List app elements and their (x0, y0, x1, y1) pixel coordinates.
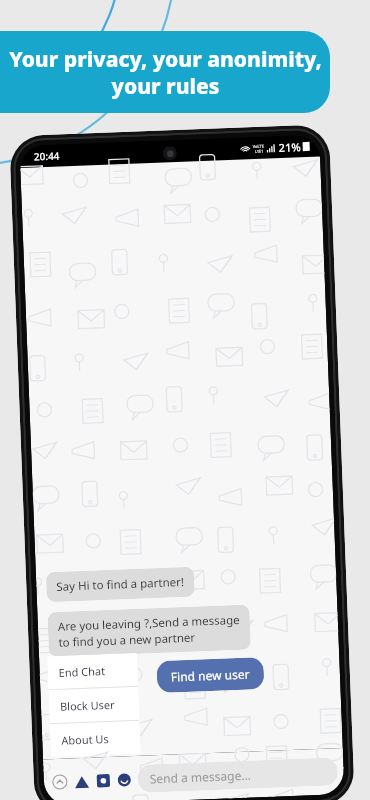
staticText: VoLTE (252, 144, 265, 149)
staticText: 20:44 (34, 148, 60, 163)
staticText: Block User (60, 697, 115, 714)
button[interactable]: Gallery (72, 772, 91, 790)
button[interactable]: Send a message... (137, 757, 338, 793)
staticText: End Chat (58, 663, 106, 680)
button[interactable]: End Chat (47, 653, 138, 689)
button[interactable]: About Us (50, 721, 141, 757)
button[interactable]: Block User (48, 687, 140, 723)
button[interactable]: Expand (49, 771, 70, 792)
button[interactable]: Find new user (156, 657, 264, 693)
staticText: Say Hi to find a partner! (56, 574, 185, 595)
button[interactable]: Say Hi to find a partner! (46, 567, 195, 602)
staticText: 21% (278, 139, 301, 155)
button[interactable]: Emoji (114, 770, 133, 789)
staticText: About Us (61, 731, 109, 748)
button[interactable]: Camera (93, 771, 112, 790)
staticText: Your privacy, your anonimity, your rules (9, 45, 322, 100)
staticText: LTE1 (255, 149, 264, 154)
staticText: Find new user (171, 666, 250, 685)
button[interactable]: Are you leaving ?,Send a message to find… (47, 604, 251, 657)
staticText: Send a message... (149, 767, 252, 786)
staticText: Are you leaving ?,Send a message to find… (58, 612, 241, 650)
